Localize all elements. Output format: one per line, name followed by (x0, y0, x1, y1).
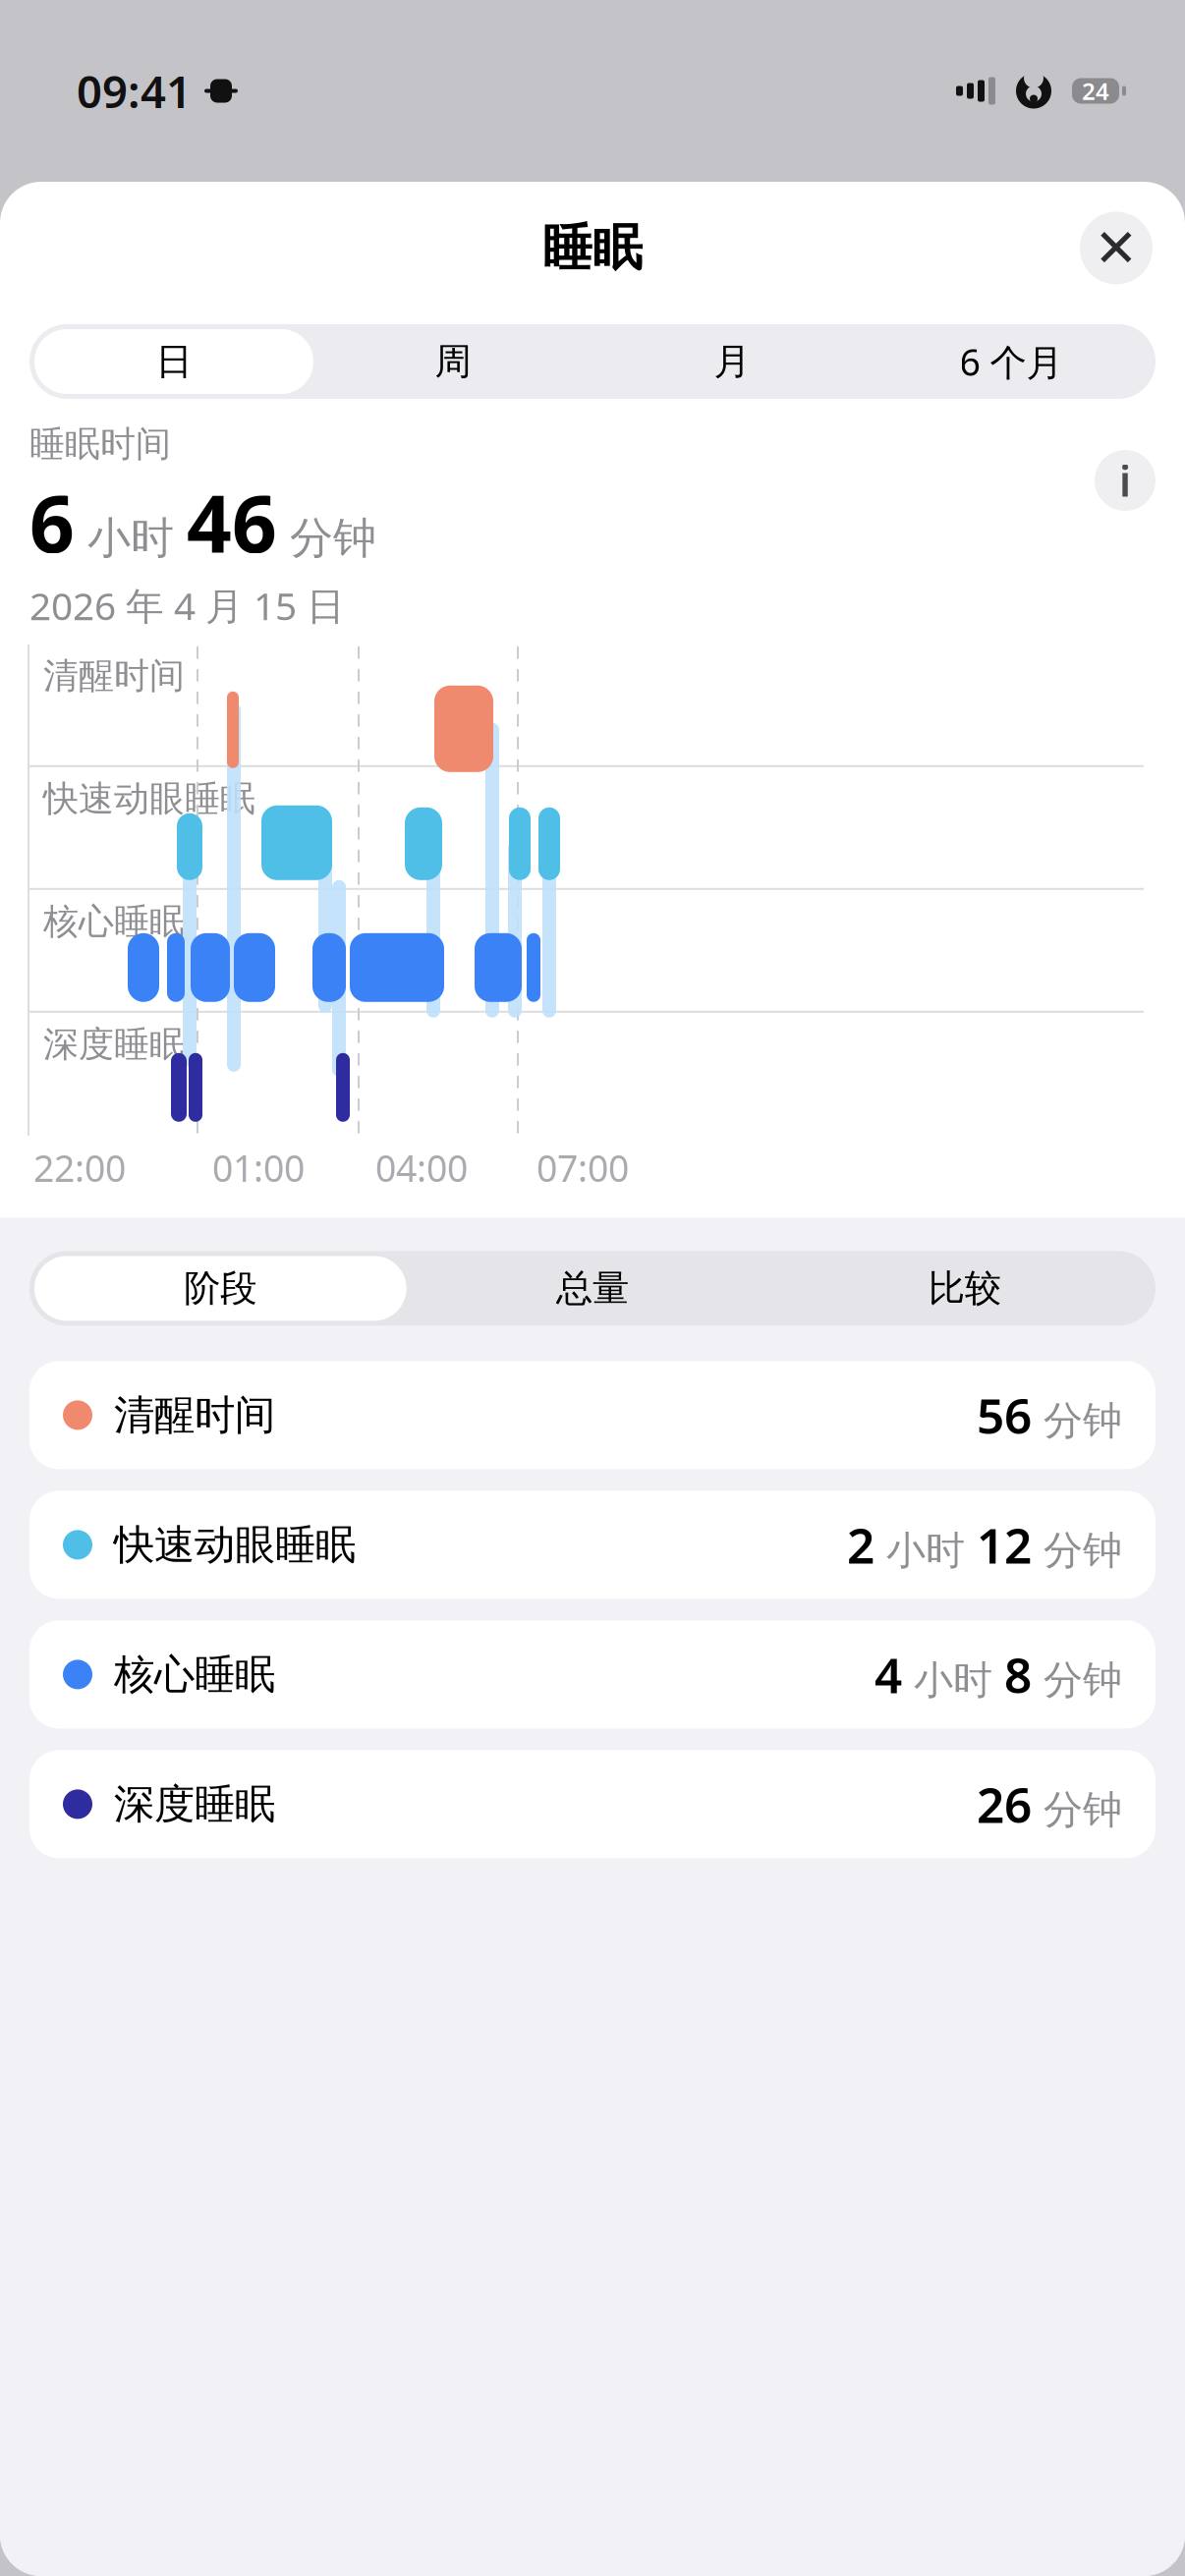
button[interactable]: 深度睡眠 (0, 1750, 1185, 1858)
staticText: 分钟 (1032, 1526, 1122, 1575)
staticText: 01:00 (212, 1143, 305, 1192)
button[interactable]: 清醒时间 (0, 1361, 1185, 1469)
staticText: 睡眠时间 (29, 422, 171, 466)
button[interactable]: 阶段 (34, 1256, 406, 1321)
staticText: 周 (435, 339, 471, 384)
staticText: 快速动眼睡眠 (114, 1520, 356, 1570)
button[interactable]: 核心睡眠 (0, 1620, 1185, 1729)
staticText: 56 (977, 1383, 1032, 1447)
staticText: 睡眠 (542, 218, 643, 279)
staticText: 比较 (928, 1266, 1001, 1311)
staticText: 清醒时间 (43, 654, 185, 698)
staticText: 6 (29, 470, 75, 574)
staticText: 小时 (875, 1526, 977, 1575)
staticText: 4 (875, 1642, 902, 1707)
staticText: 07:00 (536, 1143, 629, 1192)
button[interactable]: 关闭 (1080, 212, 1153, 284)
staticText: 04:00 (375, 1143, 468, 1192)
staticText: 深度睡眠 (43, 1023, 185, 1066)
button[interactable]: 周 (313, 329, 592, 394)
staticText: 阶段 (184, 1266, 257, 1311)
staticText: 分钟 (1032, 1786, 1122, 1834)
staticText: 24 (1082, 75, 1109, 107)
staticText: i (1119, 453, 1131, 508)
button[interactable]: 快速动眼睡眠 (0, 1491, 1185, 1599)
staticText: 2026 年 4 月 15 日 (29, 580, 345, 631)
staticText: 26 (977, 1772, 1032, 1836)
staticText: 12 (977, 1513, 1032, 1577)
staticText: 6 个月 (959, 337, 1063, 386)
staticText: 8 (1004, 1642, 1032, 1707)
staticText: 日 (156, 339, 192, 384)
staticText: 月 (714, 339, 750, 384)
staticText: 深度睡眠 (114, 1779, 275, 1829)
button[interactable]: 总量 (406, 1256, 779, 1321)
staticText: 46 (187, 470, 277, 574)
staticText: 2 (847, 1513, 875, 1577)
staticText: 总量 (556, 1266, 629, 1311)
staticText: 清醒时间 (114, 1390, 275, 1440)
staticText: 分钟 (1032, 1656, 1122, 1704)
button[interactable]: 信息 (1095, 450, 1156, 511)
staticText: 核心睡眠 (114, 1650, 275, 1699)
staticText: ✕ (1094, 218, 1138, 278)
staticText: 分钟 (277, 512, 376, 565)
staticText: 分钟 (1032, 1397, 1122, 1445)
staticText: 核心睡眠 (43, 900, 185, 943)
button[interactable]: 日 (34, 329, 313, 394)
staticText: 快速动眼睡眠 (43, 777, 255, 820)
staticText: 09:41 (77, 61, 192, 120)
staticText: 22:00 (33, 1143, 126, 1192)
button[interactable]: 比较 (779, 1256, 1151, 1321)
button[interactable]: 月 (592, 329, 872, 394)
button[interactable]: 6 个月 (872, 329, 1151, 394)
staticText: 小时 (75, 512, 187, 565)
staticText: 小时 (902, 1656, 1004, 1704)
